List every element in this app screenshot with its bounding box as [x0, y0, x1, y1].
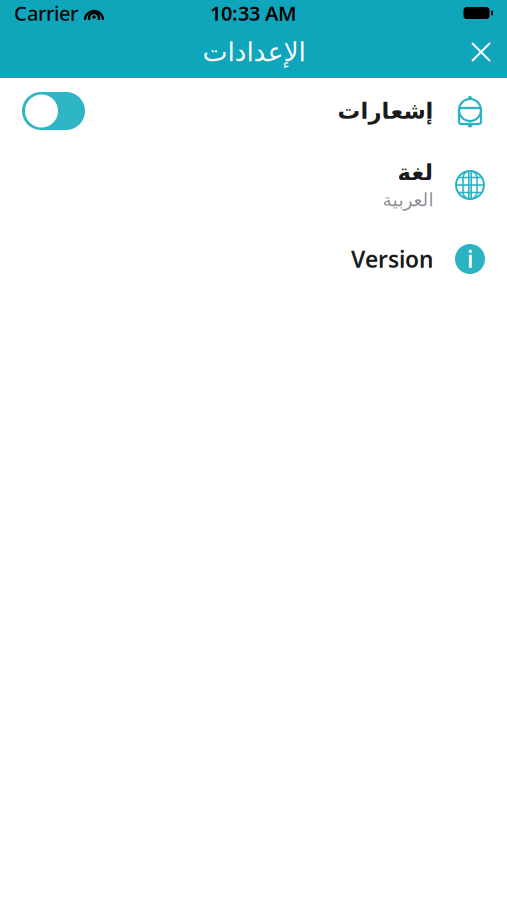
staticText: لغة — [397, 159, 433, 185]
staticText: Version — [351, 244, 433, 274]
button[interactable]: إشعارات — [0, 78, 507, 144]
button[interactable]: Version — [0, 226, 507, 292]
staticText: إشعارات — [337, 98, 433, 124]
button[interactable]: Close — [455, 26, 507, 78]
staticText: i — [467, 244, 473, 274]
staticText: الإعدادات — [202, 37, 305, 67]
staticText: 10:33 AM — [210, 0, 297, 26]
button[interactable]: لغة — [0, 144, 507, 226]
staticText: Carrier — [14, 0, 78, 26]
staticText: العربية — [382, 189, 433, 210]
